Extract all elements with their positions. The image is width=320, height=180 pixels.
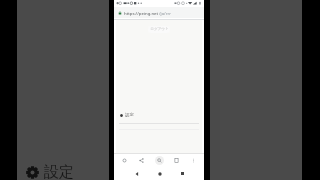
button[interactable]: Share — [135, 154, 148, 167]
button[interactable]: 設定 — [116, 111, 202, 119]
button[interactable]: More options — [187, 154, 200, 167]
staticText: /ja/rrr — [159, 10, 172, 16]
button[interactable]: Search — [153, 154, 166, 167]
staticText: 設定 — [125, 112, 134, 118]
staticText: https://peing.net — [124, 10, 159, 16]
button[interactable]: Recents — [177, 168, 188, 179]
button[interactable]: Home — [118, 154, 131, 167]
button[interactable]: ログアウト — [116, 26, 202, 33]
button[interactable]: Back — [131, 168, 142, 179]
button[interactable]: Home — [154, 168, 165, 179]
button[interactable]: https://peing.net — [114, 7, 204, 18]
staticText: ログアウト — [150, 27, 169, 32]
staticText: 設定 — [44, 163, 74, 180]
button[interactable]: Tabs — [170, 154, 183, 167]
